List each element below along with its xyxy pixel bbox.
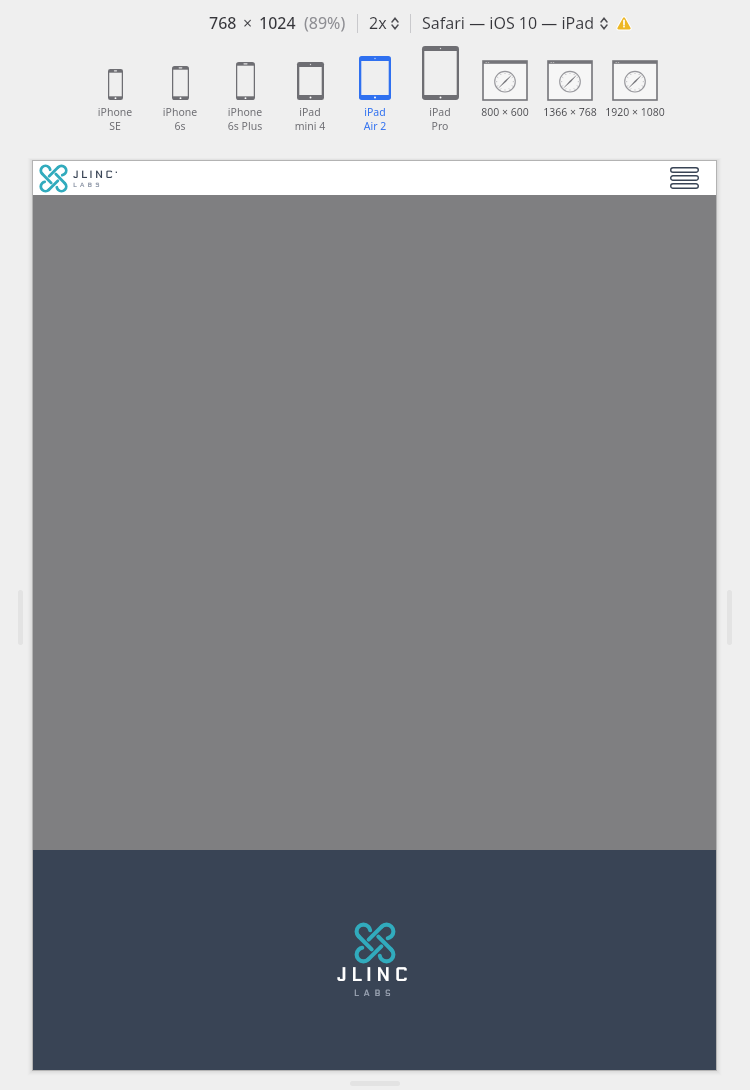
staticText: iPhone [70,105,160,119]
button[interactable] [525,52,615,100]
staticText: SE [70,119,160,133]
staticText: Air 2 [330,119,420,133]
staticText: iPhone [200,105,290,119]
button[interactable]: Change [600,17,608,30]
staticText: · [115,168,118,179]
staticText: (89%) [304,12,346,34]
button[interactable]: Warning [616,15,632,31]
button[interactable] [460,52,550,100]
staticText: Pro [395,119,485,133]
staticText: 6s Plus [200,119,290,133]
staticText: Safari — iOS 10 — iPad [422,12,595,34]
staticText: 768 [209,12,237,34]
staticText: 800 × 600 [460,105,550,119]
button[interactable] [330,40,420,100]
button[interactable] [395,40,485,100]
button[interactable]: 768 [209,12,296,34]
staticText: JLINC [337,965,412,986]
button[interactable] [265,40,355,100]
staticText: 2x [369,12,387,34]
button[interactable] [70,40,160,100]
staticText: iPad [330,105,420,119]
staticText: LABS [354,988,396,998]
staticText: iPhone [135,105,225,119]
staticText: 1024 [259,12,296,34]
staticText: LABS [73,181,103,189]
staticText: JLINC [73,168,115,180]
button[interactable]: Change [391,17,399,30]
staticText: iPad [395,105,485,119]
button[interactable]: 2x [369,12,399,34]
staticText: 1366 × 768 [525,105,615,119]
staticText: iPad [265,105,355,119]
button[interactable] [135,40,225,100]
button[interactable] [200,40,290,100]
button[interactable] [590,52,680,100]
staticText: mini 4 [265,119,355,133]
button[interactable]: Menu [668,162,700,194]
staticText: 6s [135,119,225,133]
button[interactable]: Safari — iOS 10 — iPad [422,12,608,34]
staticText: × [243,12,253,34]
staticText: 1920 × 1080 [590,105,680,119]
